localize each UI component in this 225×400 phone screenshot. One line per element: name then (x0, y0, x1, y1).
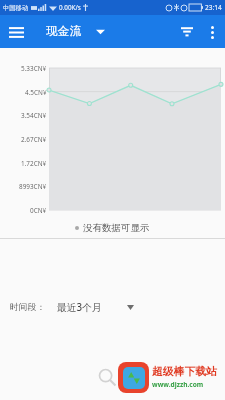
staticText: 1.72CN¥ (21, 159, 47, 168)
button[interactable]: Open navigation drawer (4, 20, 28, 44)
staticText: 时间段： (10, 302, 46, 313)
staticText: 23:14 (205, 3, 222, 12)
button[interactable]: 现金流 (46, 24, 105, 39)
staticText: 2.67CN¥ (21, 135, 47, 144)
button[interactable]: 最近3个月 (55, 296, 136, 319)
staticText: 超级棒下载站 (152, 365, 217, 379)
staticText: 0.00K/s (59, 3, 81, 12)
staticText: www.djzzh.com (152, 380, 204, 389)
staticText: 5.33CN¥ (21, 64, 47, 73)
staticText: 最近3个月 (57, 301, 102, 314)
staticText: 8993CN¥ (19, 182, 47, 191)
staticText: 中国移动 (3, 4, 29, 12)
staticText: 0CN¥ (30, 206, 47, 215)
button[interactable]: Filter (173, 18, 200, 45)
staticText: 3.54CN¥ (21, 111, 47, 120)
button[interactable]: More options (200, 20, 224, 44)
staticText: 4.5CN¥ (25, 88, 47, 97)
staticText: 现金流 (46, 24, 82, 39)
staticText: 没有数据可显示 (83, 222, 150, 234)
